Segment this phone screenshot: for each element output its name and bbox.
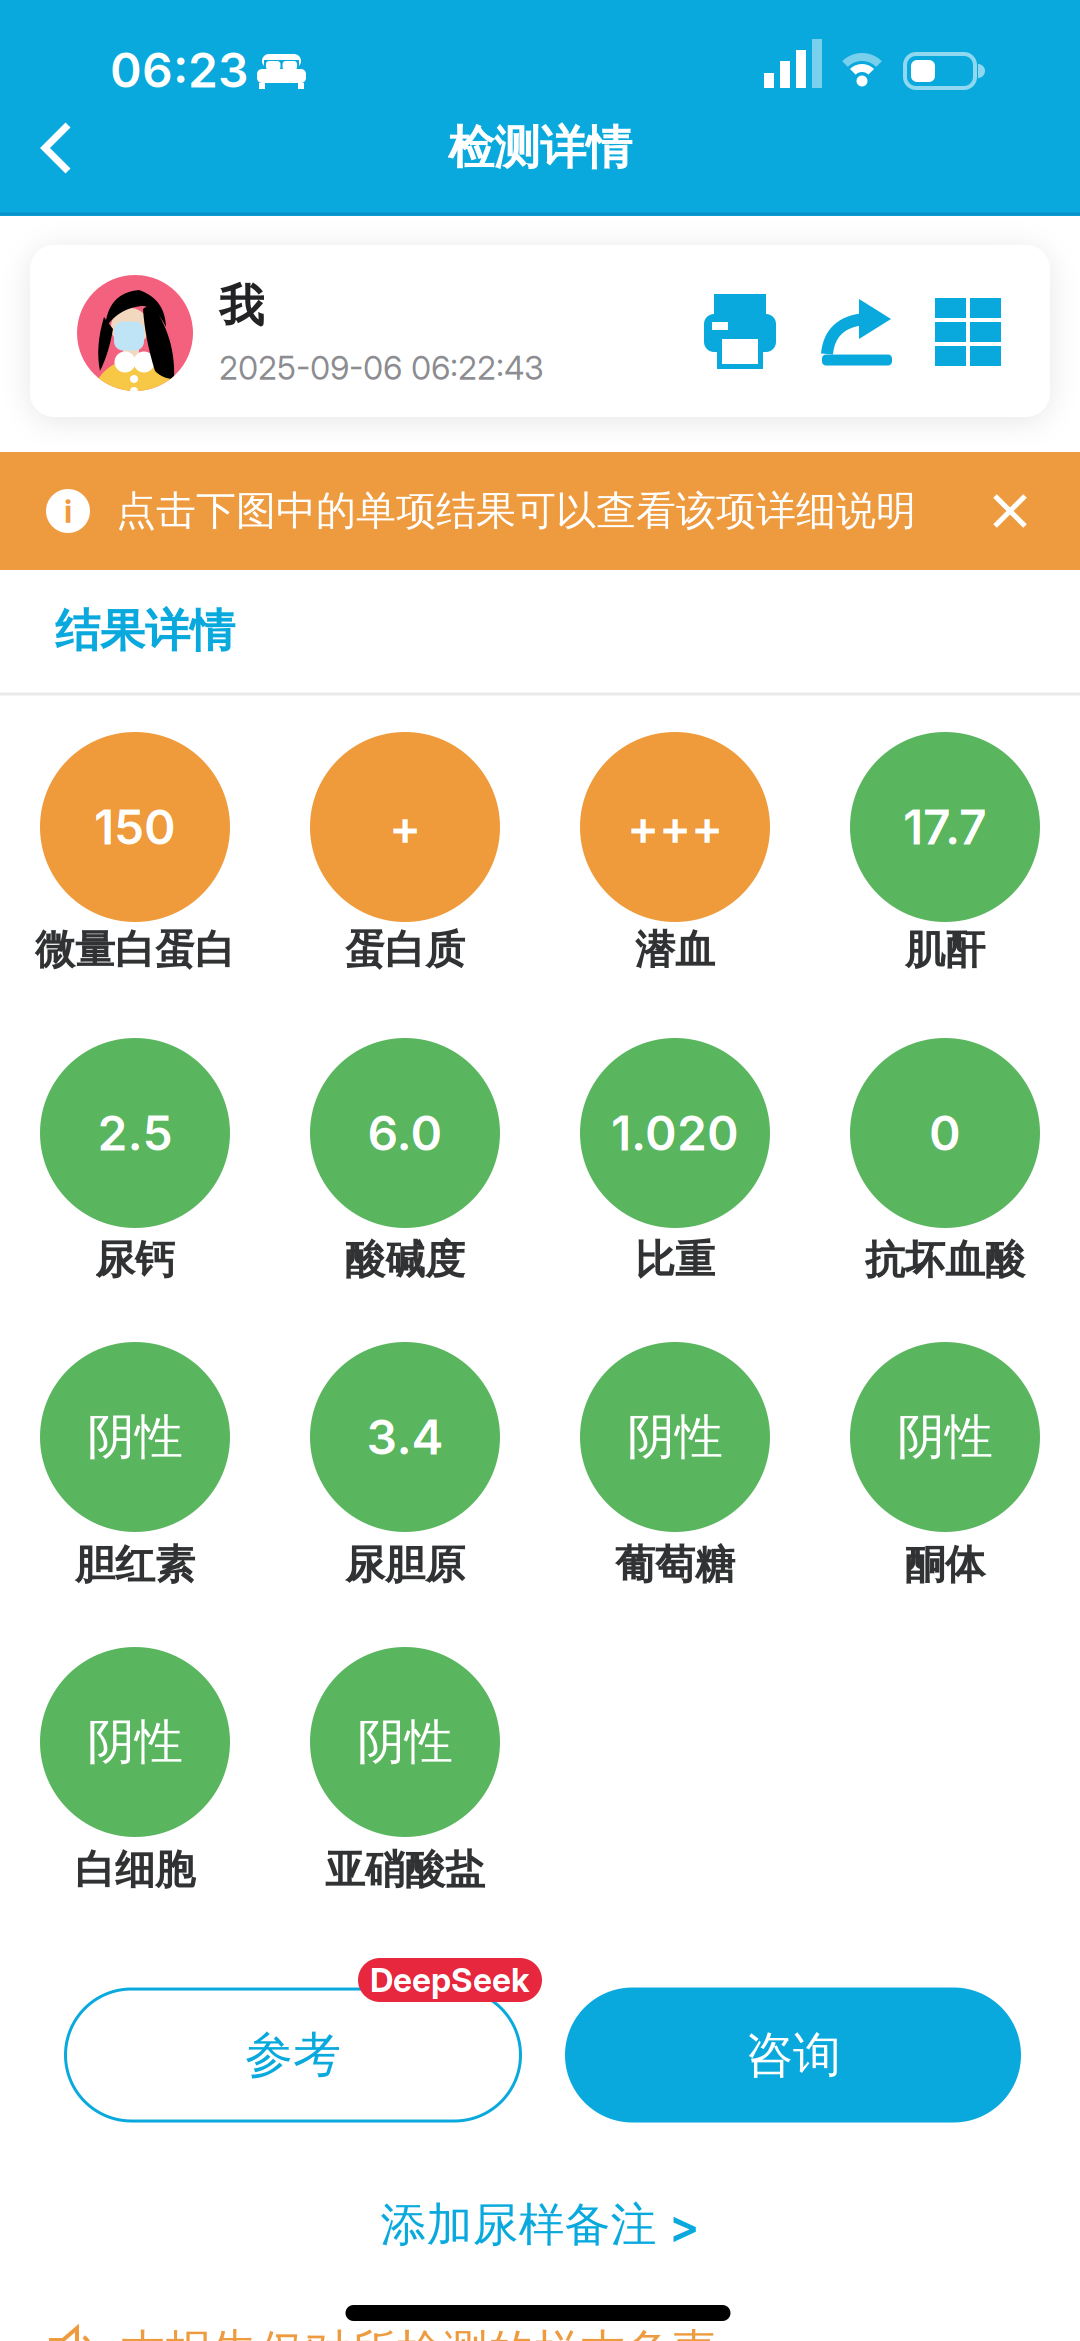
staticText: 06:23 — [110, 41, 249, 99]
button[interactable]: 阴性 — [580, 1342, 770, 1532]
button[interactable]: 参考 — [64, 1987, 522, 2122]
button[interactable]: + — [310, 732, 500, 922]
button[interactable]: Print — [700, 292, 780, 372]
staticText: 酮体 — [905, 1540, 985, 1590]
staticText: + — [389, 798, 421, 856]
button[interactable]: 6.0 — [310, 1038, 500, 1228]
button[interactable]: 150 — [40, 732, 230, 922]
button[interactable]: 阴性 — [850, 1342, 1040, 1532]
staticText: 150 — [94, 798, 176, 856]
staticText: 白细胞 — [75, 1845, 195, 1895]
staticText: 抗坏血酸 — [865, 1235, 1025, 1285]
button[interactable]: +++ — [580, 732, 770, 922]
staticText: 添加尿样备注 > — [380, 2196, 699, 2254]
button[interactable]: 阴性 — [40, 1647, 230, 1837]
staticText: 阴性 — [897, 1407, 993, 1467]
staticText: 亚硝酸盐 — [325, 1845, 485, 1895]
staticText: 3.4 — [366, 1408, 443, 1466]
button[interactable]: 0 — [850, 1038, 1040, 1228]
staticText: +++ — [627, 798, 723, 856]
staticText: 1.020 — [611, 1104, 739, 1162]
staticText: DeepSeek — [370, 1960, 530, 2000]
button[interactable]: Share — [817, 292, 897, 372]
staticText: 比重 — [635, 1235, 715, 1285]
staticText: 2025-09-06 06:22:43 — [219, 348, 544, 388]
staticText: 结果详情 — [55, 603, 235, 659]
staticText: 阴性 — [87, 1712, 183, 1772]
button[interactable]: 17.7 — [850, 732, 1040, 922]
button[interactable]: Back — [27, 118, 87, 178]
staticText: i — [64, 492, 72, 530]
button[interactable]: 2.5 — [40, 1038, 230, 1228]
staticText: 阴性 — [357, 1712, 453, 1772]
staticText: 潜血 — [635, 925, 715, 975]
staticText: 微量白蛋白 — [35, 925, 235, 975]
staticText: 胆红素 — [75, 1540, 195, 1590]
staticText: 检测详情 — [448, 119, 632, 177]
staticText: 肌酐 — [905, 925, 985, 975]
staticText: 尿胆原 — [345, 1540, 465, 1590]
button[interactable]: 阴性 — [40, 1342, 230, 1532]
staticText: 17.7 — [903, 798, 987, 856]
staticText: 酸碱度 — [345, 1235, 465, 1285]
button[interactable]: 阴性 — [310, 1647, 500, 1837]
staticText: 2.5 — [97, 1104, 172, 1162]
button[interactable]: Report table — [928, 292, 1008, 372]
staticText: 葡萄糖 — [615, 1540, 735, 1590]
button[interactable]: 1.020 — [580, 1038, 770, 1228]
staticText: 我 — [219, 278, 264, 334]
staticText: 阴性 — [627, 1407, 723, 1467]
staticText: 点击下图中的单项结果可以查看该项详细说明 — [116, 486, 916, 536]
staticText: 参考 — [245, 2025, 341, 2085]
staticText: 本报告仅对所检测的样本负责 — [120, 2323, 718, 2341]
staticText: 6.0 — [367, 1104, 442, 1162]
staticText: 蛋白质 — [345, 925, 465, 975]
staticText: 0 — [929, 1104, 961, 1162]
button[interactable]: 3.4 — [310, 1342, 500, 1532]
staticText: 阴性 — [87, 1407, 183, 1467]
button[interactable]: 咨询 — [565, 1987, 1021, 2122]
staticText: 咨询 — [745, 2025, 841, 2085]
button[interactable]: 添加尿样备注 > — [380, 2196, 699, 2254]
button[interactable]: Dismiss — [980, 481, 1040, 541]
staticText: 尿钙 — [95, 1235, 175, 1285]
